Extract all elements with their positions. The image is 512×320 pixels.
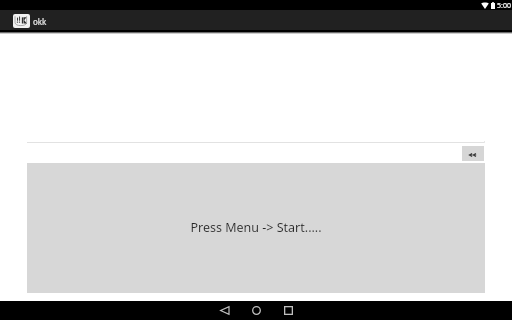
button[interactable]: Collapse bbox=[462, 146, 484, 161]
button[interactable]: Recent apps bbox=[272, 301, 304, 320]
staticText: 5:00 bbox=[497, 1, 511, 11]
button[interactable]: Home bbox=[240, 301, 272, 320]
button[interactable]: App icon bbox=[13, 14, 30, 28]
staticText: Press Menu -> Start..... bbox=[190, 219, 322, 236]
staticText: okk bbox=[33, 16, 47, 27]
button[interactable]: Back bbox=[208, 301, 240, 320]
